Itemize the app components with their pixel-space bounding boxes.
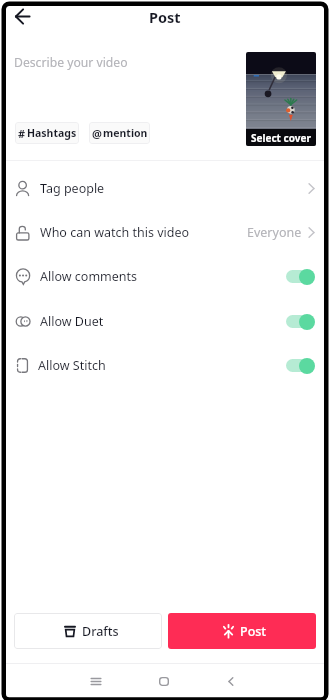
- button[interactable]: [286, 268, 315, 285]
- staticText: Everyone: [247, 224, 302, 241]
- staticText: @: [92, 126, 102, 141]
- staticText: #: [18, 126, 26, 141]
- button[interactable]: [286, 313, 315, 330]
- button[interactable]: Post: [168, 613, 316, 649]
- staticText: Allow Stitch: [38, 357, 106, 374]
- button[interactable]: Tag people: [5, 166, 324, 210]
- button[interactable]: Recents: [84, 669, 108, 693]
- staticText: Hashtags: [27, 126, 77, 140]
- button[interactable]: Allow Stitch: [5, 343, 324, 387]
- staticText: Select cover: [251, 131, 311, 145]
- staticText: mention: [103, 126, 148, 140]
- button[interactable]: Who can watch this video: [5, 210, 324, 254]
- button[interactable]: #: [15, 122, 79, 144]
- staticText: Allow comments: [40, 268, 138, 285]
- button[interactable]: @: [89, 122, 150, 144]
- button[interactable]: [286, 357, 315, 374]
- button[interactable]: Allow comments: [5, 254, 324, 298]
- staticText: Post: [149, 7, 181, 27]
- button[interactable]: Drafts: [14, 613, 162, 649]
- staticText: Tag people: [40, 180, 105, 197]
- staticText: Describe your video: [14, 54, 128, 71]
- button[interactable]: Home: [152, 669, 176, 693]
- button[interactable]: Select cover: [246, 52, 316, 146]
- button[interactable]: Back: [11, 5, 34, 28]
- button[interactable]: Back: [219, 669, 243, 693]
- button[interactable]: Allow Duet: [5, 299, 324, 343]
- staticText: Post: [240, 623, 267, 640]
- staticText: Who can watch this video: [40, 224, 190, 241]
- staticText: Allow Duet: [40, 313, 104, 330]
- staticText: Drafts: [82, 623, 119, 640]
